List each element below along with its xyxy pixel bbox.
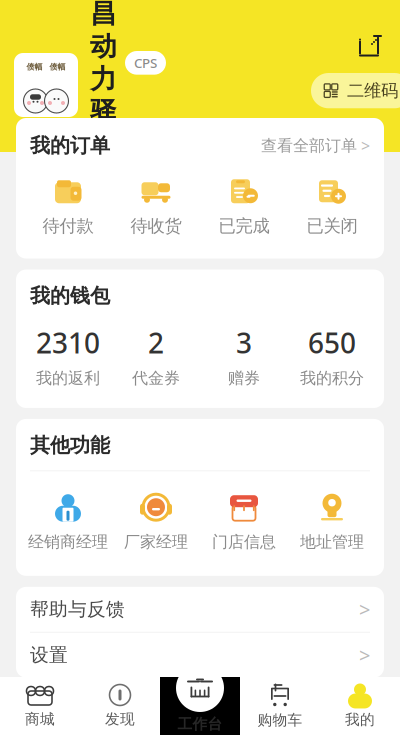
button[interactable]: 工作台 — [160, 664, 240, 733]
staticText: 地址管理 — [300, 532, 364, 552]
staticText: 查看全部订单 — [261, 136, 357, 155]
staticText: 工作台 — [177, 715, 222, 733]
button[interactable]: 查看全部订单 — [261, 132, 370, 159]
staticText: 偾幅 — [26, 62, 42, 72]
staticText: 偾幅 — [49, 62, 65, 72]
staticText: 已完成 — [218, 215, 269, 236]
button[interactable]: 分享 — [350, 26, 388, 64]
staticText: 赠券 — [228, 368, 260, 388]
staticText: 购物车 — [257, 711, 302, 729]
button[interactable]: 3 — [200, 324, 288, 388]
button[interactable]: 二维码 — [311, 73, 400, 108]
staticText: 我的钱包 — [30, 283, 110, 308]
button[interactable]: 厂家经理 — [112, 488, 200, 556]
button[interactable]: 已完成 — [200, 173, 288, 240]
staticText: 商城 — [25, 710, 55, 728]
button[interactable]: 购物车 — [240, 677, 320, 735]
staticText: 发现 — [105, 710, 135, 728]
button[interactable]: 待付款 — [24, 173, 112, 240]
staticText: 设置 — [30, 644, 68, 666]
button[interactable]: 我的 — [320, 677, 400, 735]
button[interactable]: 商城 — [0, 677, 80, 735]
staticText: 我的积分 — [300, 368, 364, 388]
staticText: > — [359, 642, 370, 668]
staticText: 帮助与反馈 — [30, 598, 125, 621]
staticText: 650 — [308, 324, 356, 361]
button[interactable]: 地址管理 — [288, 488, 376, 556]
staticText: 已关闭 — [306, 215, 357, 236]
staticText: 3 — [236, 324, 252, 361]
button[interactable]: 门店信息 — [200, 488, 288, 556]
staticText: 门店省内排名 — [141, 170, 189, 209]
staticText: 待付款 — [42, 215, 93, 236]
staticText: 二维码 — [347, 80, 398, 101]
button[interactable]: 经销商经理 — [24, 488, 112, 556]
staticText: 代金券 — [132, 368, 180, 388]
button[interactable]: 已关闭 — [288, 173, 376, 240]
button[interactable]: 2310 — [24, 324, 112, 388]
staticText: 经销商经理 — [28, 532, 108, 552]
button[interactable]: 帮助与反馈 — [16, 587, 384, 632]
staticText: 待收货 — [130, 215, 181, 236]
staticText: 我的返利 — [36, 368, 100, 388]
staticText: > — [361, 135, 370, 156]
staticText: 我的 — [345, 710, 375, 728]
button[interactable]: 发现 — [80, 677, 160, 735]
staticText: CPS — [134, 54, 157, 72]
button[interactable]: 2 — [112, 324, 200, 388]
staticText: > — [359, 596, 370, 623]
staticText: 其他功能 — [30, 433, 110, 457]
button[interactable]: 650 — [288, 324, 376, 388]
staticText: 我的订单 — [30, 133, 110, 158]
staticText: 2310 — [36, 324, 100, 361]
button[interactable]: 待收货 — [112, 173, 200, 240]
staticText: 门店信息 — [212, 532, 276, 552]
button[interactable]: 设置 — [16, 633, 384, 678]
staticText: 瑞昌动力驿站 — [90, 0, 117, 161]
staticText: 2 — [148, 324, 164, 361]
staticText: 厂家经理 — [124, 532, 188, 552]
